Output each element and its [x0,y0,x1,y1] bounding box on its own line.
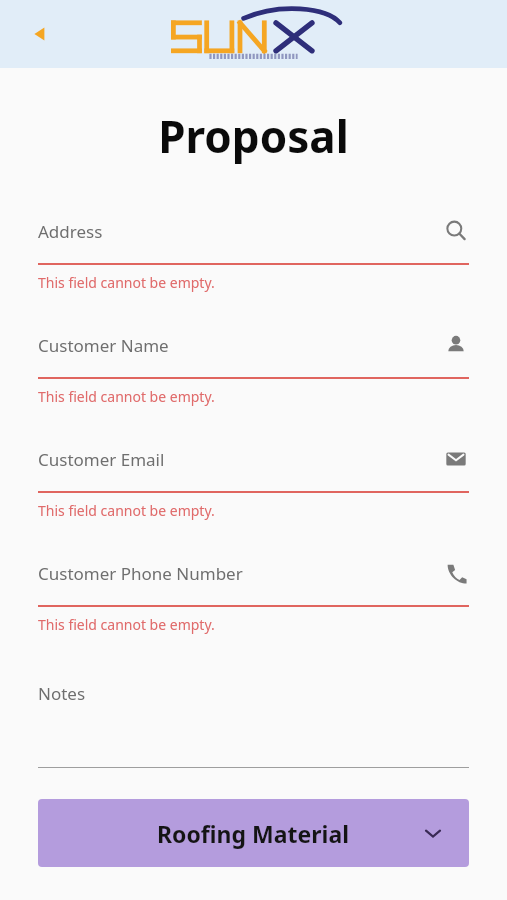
button[interactable]: Notes [38,682,469,768]
button[interactable]: Customer Phone Number [0,550,507,664]
staticText: This field cannot be empty. [38,615,215,634]
button[interactable]: Roofing Material [38,799,469,867]
staticText: Roofing Material [157,818,350,849]
button[interactable]: Customer Name [0,322,507,436]
staticText: This field cannot be empty. [38,501,215,520]
button[interactable]: Back [20,14,60,54]
staticText: This field cannot be empty. [38,273,215,292]
staticText: Notes [38,682,86,705]
staticText: Customer Email [38,448,165,471]
staticText: Proposal [0,106,507,166]
staticText: Customer Name [38,334,169,357]
button[interactable]: Address [0,208,507,322]
staticText: This field cannot be empty. [38,387,215,406]
staticText: Address [38,220,103,243]
staticText: Customer Phone Number [38,562,243,585]
button[interactable]: Customer Email [0,436,507,550]
